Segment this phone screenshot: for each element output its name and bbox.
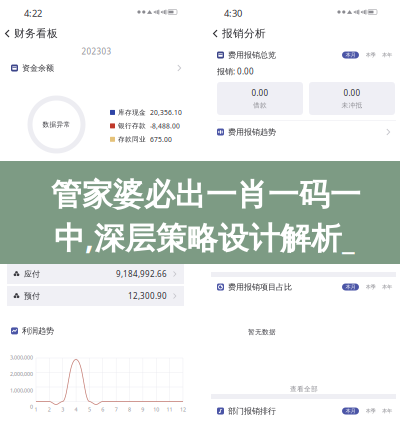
staticText: 存款同业 — [118, 135, 146, 143]
staticText: 预付 — [24, 291, 40, 301]
staticText: 0.00 — [251, 88, 268, 98]
staticText: 10 — [153, 406, 159, 413]
staticText: 部门报销排行 — [228, 406, 276, 416]
staticText: 6 — [101, 406, 104, 413]
staticText: 1,000,000 — [10, 387, 33, 394]
button[interactable]: 本月 — [342, 283, 359, 290]
button[interactable]: 本年 — [382, 284, 392, 290]
staticText: 本年 — [382, 284, 392, 290]
staticText: 未冲抵 — [341, 101, 362, 109]
staticText: 银行存款 — [118, 122, 146, 130]
button[interactable]: 本季 — [365, 408, 375, 414]
staticText: 费用报销趋势 — [228, 127, 276, 137]
staticText: 4:22 — [24, 7, 42, 19]
button[interactable]: 本季 — [365, 52, 375, 58]
staticText: 0.00 — [343, 88, 360, 98]
button[interactable]: 应付 — [0, 0, 177, 20]
staticText: 7 — [115, 406, 118, 413]
staticText: 0 — [30, 403, 33, 410]
staticText: 资金余额 — [22, 63, 54, 73]
staticText: 2 — [48, 406, 51, 413]
staticText: 借款 — [253, 101, 267, 109]
staticText: 报销: 0.00 — [217, 66, 254, 77]
staticText: 12 — [180, 406, 186, 413]
staticText: 2,000,000 — [10, 370, 33, 377]
staticText: 报销分析 — [222, 27, 266, 40]
button[interactable]: 本月 — [342, 407, 359, 414]
staticText: 本季 — [365, 284, 375, 290]
staticText: 费用报销总览 — [228, 50, 276, 60]
staticText: 202303 — [81, 46, 111, 57]
staticText: 12,300.90 — [128, 291, 167, 301]
staticText: 利润趋势 — [22, 326, 54, 336]
button[interactable]: 资金余额 — [0, 0, 171, 12]
staticText: 应付 — [24, 269, 40, 279]
button[interactable]: 本年 — [382, 52, 392, 58]
staticText: 本年 — [382, 408, 392, 414]
staticText: 4:30 — [224, 7, 242, 19]
button[interactable]: 本月 — [342, 51, 359, 58]
staticText: 库存现金 — [118, 108, 146, 116]
button[interactable]: 本季 — [365, 284, 375, 290]
staticText: 本季 — [365, 52, 375, 58]
button[interactable]: 本年 — [382, 408, 392, 414]
staticText: 4 — [75, 406, 78, 413]
button[interactable]: Back — [0, 0, 70, 14]
staticText: 财务看板 — [14, 27, 58, 40]
staticText: 本季 — [365, 408, 375, 414]
staticText: 费用报销项目占比 — [228, 282, 292, 292]
staticText: 本月 — [345, 408, 355, 414]
staticText: 8 — [128, 406, 131, 413]
button[interactable]: Back — [0, 0, 70, 14]
staticText: 9,184,992.66 — [116, 269, 167, 279]
staticText: 675.00 — [150, 135, 172, 144]
staticText: 查看全部 — [290, 385, 318, 393]
button[interactable]: 查看全部 — [0, 0, 184, 12]
staticText: 1 — [34, 406, 37, 413]
staticText: 暂无数据 — [248, 328, 276, 336]
staticText: 本年 — [382, 52, 392, 58]
staticText: 管家婆必出一肖一码一 — [51, 176, 361, 214]
staticText: 5 — [88, 406, 91, 413]
button[interactable]: 预付 — [0, 0, 177, 20]
staticText: 20,356.10 — [150, 108, 182, 117]
button[interactable]: 费用报销趋势 — [0, 0, 174, 12]
staticText: 数据异常 — [42, 120, 70, 129]
staticText: -8,488.00 — [150, 121, 180, 130]
staticText: 中,深层策略设计解析_ — [54, 217, 355, 258]
staticText: 本月 — [345, 284, 355, 290]
staticText: 本月 — [345, 52, 355, 58]
staticText: 9 — [141, 406, 144, 413]
staticText: 3,000,000 — [10, 354, 33, 361]
staticText: 11 — [167, 406, 173, 413]
staticText: 3 — [61, 406, 64, 413]
